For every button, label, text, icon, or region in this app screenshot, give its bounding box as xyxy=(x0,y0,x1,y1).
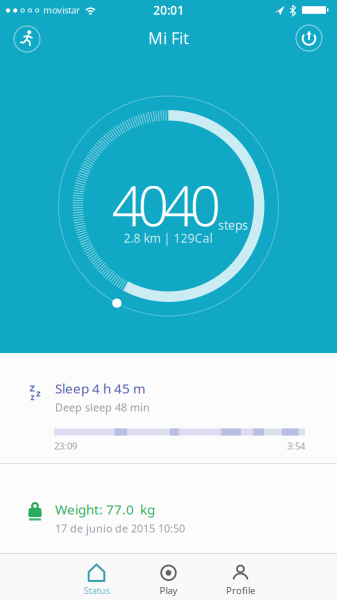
button[interactable]: Weight: 77.0 kg xyxy=(0,464,337,553)
button[interactable]: Play xyxy=(132,557,204,600)
button[interactable]: Status xyxy=(60,557,132,600)
staticText: steps xyxy=(218,217,248,233)
button[interactable]: Z xyxy=(0,353,337,463)
staticText: 23:09 xyxy=(54,440,77,452)
staticText: Weight: 77.0 kg xyxy=(55,501,155,518)
staticText: z xyxy=(36,387,41,399)
staticText: 4040 xyxy=(111,169,220,241)
staticText: 20:01 xyxy=(153,2,184,18)
staticText: Deep sleep 48 min xyxy=(55,400,150,414)
staticText: movistar xyxy=(43,4,80,16)
button[interactable]: Profile xyxy=(204,557,276,600)
staticText: Status xyxy=(83,584,109,597)
staticText: Play xyxy=(159,584,177,597)
button[interactable]: Sync xyxy=(294,23,324,53)
staticText: z xyxy=(31,392,35,402)
staticText: 3:54 xyxy=(287,440,305,452)
staticText: Z xyxy=(29,382,34,394)
staticText: 17 de junio de 2015 10:50 xyxy=(55,521,185,535)
button[interactable]: Activity xyxy=(12,23,42,53)
staticText: Sleep 4 h 45 m xyxy=(55,380,145,397)
staticText: Mi Fit xyxy=(148,27,189,49)
staticText: Profile xyxy=(226,584,255,597)
staticText: 2.8 km | 129Cal xyxy=(123,230,212,246)
